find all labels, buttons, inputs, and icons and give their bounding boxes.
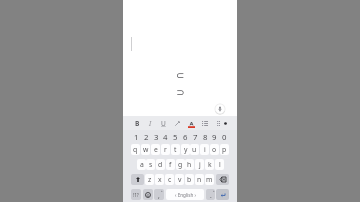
staticText: a bbox=[140, 160, 144, 169]
staticText: , bbox=[158, 191, 160, 200]
button[interactable]: e bbox=[151, 144, 160, 155]
button[interactable]: z bbox=[145, 174, 154, 185]
staticText: x bbox=[158, 175, 162, 184]
staticText: c bbox=[168, 175, 172, 184]
button[interactable]: g bbox=[176, 159, 185, 170]
staticText: ⊃ bbox=[176, 87, 185, 99]
button[interactable]: k bbox=[205, 159, 214, 170]
button[interactable]: o bbox=[210, 144, 219, 155]
button[interactable]: Highlighter bbox=[171, 117, 183, 130]
staticText: B bbox=[135, 119, 140, 128]
staticText: y bbox=[184, 145, 188, 154]
staticText: l bbox=[219, 160, 221, 169]
staticText: 1 bbox=[134, 132, 139, 143]
staticText: 6 bbox=[183, 132, 188, 143]
button[interactable]: 7 bbox=[190, 131, 200, 143]
button[interactable]: Symbols bbox=[131, 189, 141, 200]
button[interactable]: j bbox=[195, 159, 204, 170]
staticText: n bbox=[197, 175, 202, 184]
staticText: 5 bbox=[173, 132, 178, 143]
button[interactable]: Underline bbox=[157, 117, 169, 130]
staticText: 8 bbox=[203, 132, 208, 143]
button[interactable]: i bbox=[200, 144, 209, 155]
staticText: i bbox=[204, 145, 206, 154]
button[interactable]: a bbox=[137, 159, 146, 170]
staticText: f bbox=[169, 160, 172, 169]
staticText: p bbox=[222, 145, 227, 154]
staticText: ▴ bbox=[213, 189, 215, 192]
button[interactable]: n bbox=[195, 174, 204, 185]
button[interactable]: Voice input bbox=[214, 103, 226, 115]
button[interactable]: x bbox=[155, 174, 164, 185]
button[interactable]: Period bbox=[206, 189, 215, 200]
staticText: 9 bbox=[212, 132, 217, 143]
staticText: u bbox=[192, 145, 197, 154]
staticText: 2 bbox=[144, 132, 149, 143]
button[interactable]: s bbox=[146, 159, 155, 170]
button[interactable]: 1 bbox=[131, 131, 141, 143]
staticText: I bbox=[149, 119, 152, 128]
button[interactable]: 9 bbox=[209, 131, 219, 143]
staticText: j bbox=[199, 160, 201, 169]
button[interactable]: Backspace bbox=[216, 174, 229, 185]
staticText: d bbox=[158, 160, 163, 169]
staticText: 0 bbox=[222, 132, 227, 143]
button[interactable]: Enter bbox=[216, 189, 229, 200]
button[interactable]: v bbox=[175, 174, 184, 185]
button[interactable]: Space bbox=[166, 189, 204, 200]
button[interactable]: More options bbox=[219, 117, 231, 130]
staticText: e bbox=[154, 145, 158, 154]
button[interactable]: c bbox=[165, 174, 174, 185]
button[interactable]: q bbox=[131, 144, 140, 155]
button[interactable]: Italic bbox=[144, 117, 156, 130]
button[interactable]: Bulleted list bbox=[199, 117, 211, 130]
staticText: t bbox=[174, 145, 177, 154]
button[interactable]: m bbox=[205, 174, 214, 185]
staticText: g bbox=[178, 160, 183, 169]
button[interactable]: 8 bbox=[200, 131, 210, 143]
staticText: . bbox=[210, 191, 212, 200]
button[interactable]: y bbox=[181, 144, 190, 155]
staticText: w bbox=[143, 145, 149, 154]
button[interactable]: 3 bbox=[151, 131, 161, 143]
staticText: m bbox=[206, 175, 213, 184]
button[interactable]: 0 bbox=[219, 131, 229, 143]
staticText: 4 bbox=[163, 132, 168, 143]
staticText: z bbox=[148, 175, 152, 184]
staticText: 3 bbox=[154, 132, 159, 143]
staticText: ‹ English › bbox=[175, 192, 196, 198]
staticText: 7 bbox=[193, 132, 198, 143]
staticText: ⊂ bbox=[176, 70, 185, 82]
button[interactable]: w bbox=[141, 144, 150, 155]
button[interactable]: Emoji bbox=[143, 189, 153, 200]
button[interactable]: Shift bbox=[131, 174, 144, 185]
button[interactable]: p bbox=[220, 144, 229, 155]
button[interactable]: t bbox=[171, 144, 180, 155]
button[interactable]: f bbox=[166, 159, 175, 170]
staticText: b bbox=[187, 175, 192, 184]
staticText: k bbox=[208, 160, 212, 169]
staticText: ▴ bbox=[161, 189, 163, 192]
button[interactable]: 2 bbox=[141, 131, 151, 143]
staticText: o bbox=[212, 145, 217, 154]
button[interactable]: r bbox=[161, 144, 170, 155]
button[interactable]: 5 bbox=[170, 131, 180, 143]
button[interactable]: l bbox=[215, 159, 224, 170]
button[interactable]: Font colour bbox=[185, 117, 197, 130]
staticText: v bbox=[178, 175, 182, 184]
button[interactable]: h bbox=[185, 159, 194, 170]
button[interactable]: Comma bbox=[154, 189, 164, 200]
button[interactable]: Alignment bbox=[212, 117, 224, 130]
staticText: q bbox=[133, 145, 138, 154]
staticText: h bbox=[187, 160, 192, 169]
button[interactable]: b bbox=[185, 174, 194, 185]
button[interactable]: Bold bbox=[131, 117, 143, 130]
staticText: r bbox=[164, 145, 167, 154]
button[interactable]: d bbox=[156, 159, 165, 170]
button[interactable]: 6 bbox=[180, 131, 190, 143]
staticText: s bbox=[149, 160, 153, 169]
button[interactable]: u bbox=[190, 144, 199, 155]
staticText: !1? bbox=[133, 192, 139, 198]
staticText: U bbox=[161, 119, 166, 128]
button[interactable]: 4 bbox=[160, 131, 170, 143]
